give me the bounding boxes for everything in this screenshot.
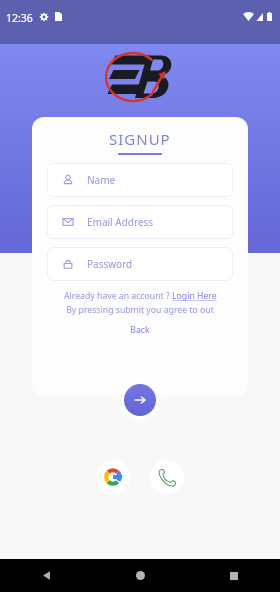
staticText: Already have an account ? bbox=[64, 290, 172, 302]
staticText: Email Address bbox=[87, 215, 154, 229]
button[interactable]: Login Here bbox=[172, 290, 217, 302]
button[interactable]: Recent apps bbox=[187, 559, 280, 592]
staticText: SIGNUP bbox=[109, 129, 171, 149]
staticText: By pressing submit you agree to out bbox=[32, 304, 248, 316]
staticText: 12:36 bbox=[6, 11, 33, 25]
button[interactable]: Back bbox=[0, 559, 94, 592]
staticText: Name bbox=[87, 173, 116, 187]
button[interactable]: Name bbox=[47, 163, 233, 197]
button[interactable]: Email Address bbox=[47, 205, 233, 239]
button[interactable]: Submit bbox=[124, 384, 156, 416]
button[interactable]: Home bbox=[94, 559, 187, 592]
button[interactable]: Password bbox=[47, 247, 233, 281]
staticText: Password bbox=[87, 257, 133, 271]
button[interactable]: Sign in with Google bbox=[96, 460, 130, 494]
button[interactable]: Sign in with phone bbox=[150, 460, 184, 494]
button[interactable]: Back bbox=[32, 324, 248, 336]
